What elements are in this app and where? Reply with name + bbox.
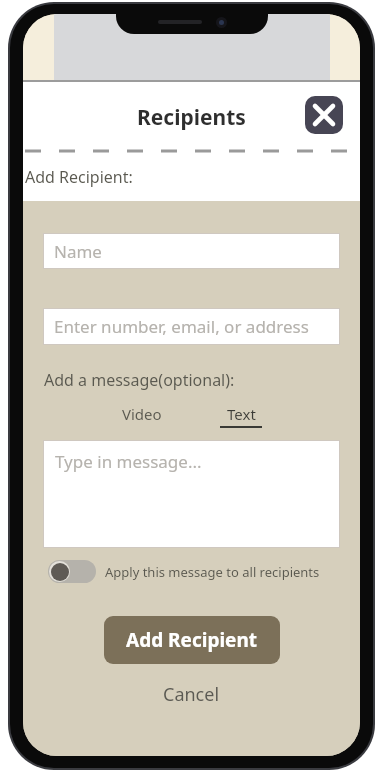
button[interactable]: Text [208, 402, 274, 430]
button[interactable]: Type in message... [43, 440, 340, 548]
button[interactable]: Video [110, 402, 174, 426]
button[interactable]: Cancel [143, 677, 240, 712]
staticText: Type in message... [55, 450, 202, 473]
button[interactable]: Add Recipient [104, 616, 280, 664]
staticText: Name [54, 240, 102, 263]
staticText: Recipients [137, 103, 246, 132]
staticText: Enter number, email, or address [54, 315, 309, 338]
staticText: Cancel [163, 682, 220, 707]
button[interactable]: Name [43, 233, 340, 269]
button[interactable]: Enter number, email, or address [43, 308, 340, 345]
button[interactable]: Apply this message to all recipients [48, 560, 320, 583]
button[interactable]: Close [305, 96, 343, 134]
staticText: Apply this message to all recipients [105, 563, 320, 581]
staticText: Add Recipient [126, 627, 258, 653]
staticText: Text [227, 404, 256, 424]
staticText: Add a message(optional): [44, 369, 235, 391]
staticText: Video [122, 404, 162, 424]
staticText: Add Recipient: [25, 166, 133, 188]
